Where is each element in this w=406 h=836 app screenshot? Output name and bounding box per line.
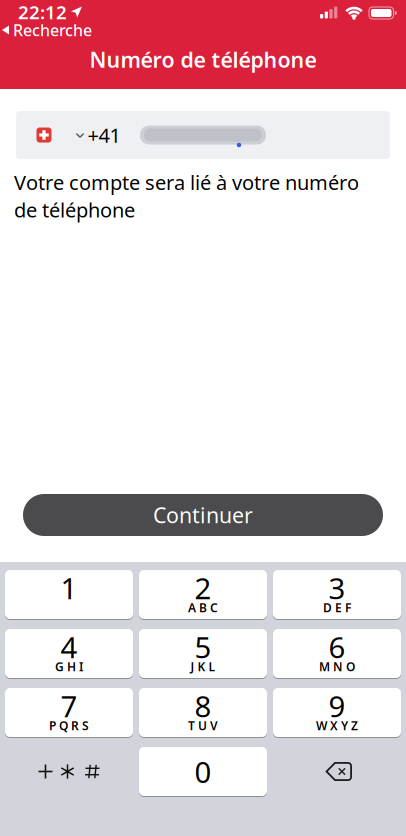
staticText: +41 [87, 122, 120, 148]
button[interactable]: 3 [273, 570, 401, 619]
button[interactable]: 4 [5, 629, 133, 678]
staticText: 7 [60, 686, 77, 725]
staticText: D E F [323, 600, 351, 615]
button[interactable]: Delete [275, 747, 403, 796]
button[interactable]: 5 [139, 629, 267, 678]
button[interactable]: 7 [5, 688, 133, 737]
button[interactable]: +41 [16, 111, 390, 159]
staticText: A B C [188, 600, 218, 615]
staticText: 5 [194, 627, 211, 666]
button[interactable]: 9 [273, 688, 401, 737]
staticText: 3 [328, 568, 345, 607]
button[interactable]: More symbols [5, 747, 133, 796]
staticText: W X Y Z [316, 718, 358, 733]
button[interactable]: 1 [5, 570, 133, 619]
staticText: de téléphone [14, 197, 135, 223]
staticText: T U V [188, 718, 218, 733]
staticText: 0 [194, 752, 211, 791]
staticText: 4 [60, 627, 77, 666]
button[interactable]: Recherche [2, 19, 92, 41]
button[interactable]: Continuer [23, 494, 383, 536]
staticText: M N O [319, 659, 355, 674]
staticText: J K L [190, 659, 215, 674]
staticText: Votre compte sera lié à votre numéro [14, 169, 359, 196]
staticText: 6 [328, 627, 345, 666]
button[interactable]: 6 [273, 629, 401, 678]
staticText: Numéro de téléphone [89, 45, 316, 74]
staticText: 8 [194, 686, 211, 725]
button[interactable]: 8 [139, 688, 267, 737]
button[interactable]: 0 [139, 747, 267, 796]
staticText: G H I [55, 659, 83, 674]
staticText: Continuer [153, 501, 253, 529]
staticText: 1 [60, 568, 77, 607]
staticText: 22:12 [18, 0, 67, 24]
staticText: Recherche [13, 19, 92, 41]
button[interactable]: 2 [139, 570, 267, 619]
staticText: 9 [328, 686, 345, 725]
staticText: 2 [194, 568, 211, 607]
staticText: P Q R S [49, 718, 89, 733]
